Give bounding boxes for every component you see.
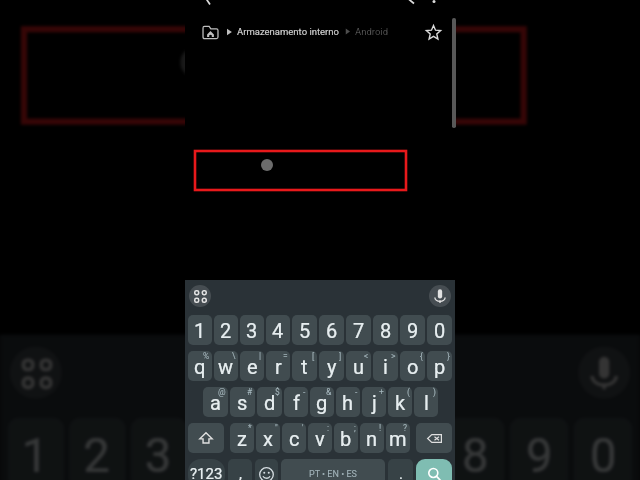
button[interactable]: q <box>188 351 212 381</box>
button[interactable]: Voice input <box>578 347 630 399</box>
button[interactable]: 9 <box>509 418 569 480</box>
button[interactable]: Search <box>416 459 452 480</box>
staticText: s <box>237 391 248 414</box>
staticText: $ <box>275 387 280 397</box>
staticText: + <box>379 387 384 397</box>
staticText: 2 <box>220 319 232 342</box>
button[interactable]: 5 <box>292 315 317 345</box>
button[interactable]: 6 <box>318 418 377 480</box>
button[interactable]: 6 <box>319 315 344 345</box>
staticText: a <box>210 391 221 414</box>
staticText: l <box>424 391 429 414</box>
staticText: 3 <box>145 427 173 480</box>
button[interactable]: h <box>336 387 360 417</box>
button[interactable]: 2 <box>69 418 126 480</box>
button[interactable]: x <box>256 423 280 453</box>
button[interactable]: 3 <box>240 315 264 345</box>
staticText: v <box>315 427 325 450</box>
button[interactable]: 9 <box>400 315 425 345</box>
button[interactable]: y <box>319 351 344 381</box>
button[interactable]: 8 <box>445 418 505 480</box>
button[interactable]: a <box>203 387 228 417</box>
button[interactable]: r <box>266 351 290 381</box>
staticText: 5 <box>299 319 311 342</box>
staticText: 8 <box>380 319 392 342</box>
button[interactable]: 0 <box>573 418 633 480</box>
button[interactable]: ?123 <box>188 459 225 480</box>
button[interactable]: n <box>360 423 384 453</box>
staticText: 7 <box>353 319 365 342</box>
staticText: j <box>372 391 377 414</box>
button[interactable] <box>416 423 452 453</box>
button[interactable]: d <box>257 387 282 417</box>
staticText: p <box>434 355 446 378</box>
button[interactable]: 4 <box>266 315 290 345</box>
button[interactable]: Keyboard options <box>189 285 211 307</box>
staticText: ] <box>339 351 342 361</box>
button[interactable]: 0 <box>427 315 452 345</box>
button[interactable]: 7 <box>346 315 371 345</box>
button[interactable] <box>188 423 224 453</box>
button[interactable]: j <box>362 387 386 417</box>
button[interactable]: 3 <box>131 418 187 480</box>
button[interactable]: u <box>346 351 371 381</box>
button[interactable]: 8 <box>373 315 398 345</box>
button[interactable]: , <box>228 459 252 480</box>
staticText: e <box>247 355 258 378</box>
staticText: 6 <box>326 319 338 342</box>
staticText: Armazenamento interno <box>237 26 339 37</box>
staticText: PT • EN • ES <box>309 469 357 480</box>
staticText: * <box>248 423 252 433</box>
button[interactable]: w <box>214 351 238 381</box>
staticText: 5 <box>270 427 299 480</box>
button[interactable]: z <box>230 423 254 453</box>
button[interactable]: Emoji <box>255 459 278 480</box>
staticText: { <box>420 351 423 361</box>
button[interactable]: m <box>386 423 410 453</box>
button[interactable]: Voice input <box>429 285 451 307</box>
button[interactable]: 4 <box>192 418 249 480</box>
staticText: % <box>203 351 210 361</box>
staticText: 9 <box>407 319 419 342</box>
button[interactable]: o <box>400 351 425 381</box>
button[interactable]: f <box>284 387 308 417</box>
staticText: m <box>389 427 407 450</box>
button[interactable]: l <box>414 387 438 417</box>
button[interactable]: c <box>282 423 306 453</box>
button[interactable]: 1 <box>188 315 212 345</box>
button[interactable]: Favourite <box>420 19 446 45</box>
button[interactable]: 5 <box>254 418 313 480</box>
button[interactable]: g <box>310 387 334 417</box>
button[interactable]: . <box>388 459 413 480</box>
button[interactable]: e <box>240 351 264 381</box>
staticText: | <box>259 351 262 361</box>
staticText: : <box>327 423 330 433</box>
staticText: - <box>355 387 358 397</box>
staticText: h <box>342 391 354 414</box>
staticText: x <box>263 427 273 450</box>
staticText: < <box>364 351 369 361</box>
button[interactable]: b <box>334 423 358 453</box>
staticText: # <box>247 387 253 397</box>
button[interactable]: s <box>230 387 255 417</box>
button[interactable]: p <box>427 351 452 381</box>
button[interactable]: t <box>292 351 317 381</box>
staticText: k <box>395 391 406 414</box>
button[interactable]: Keyboard options <box>10 347 62 399</box>
button[interactable]: k <box>388 387 412 417</box>
button[interactable]: v <box>308 423 332 453</box>
staticText: 1 <box>22 427 50 480</box>
button[interactable]: 7 <box>382 418 441 480</box>
staticText: 1 <box>194 319 206 342</box>
button[interactable]: Home <box>199 21 221 43</box>
button[interactable]: PT • EN • ES <box>281 459 385 480</box>
staticText: ? <box>403 423 408 433</box>
staticText: u <box>353 355 365 378</box>
staticText: } <box>447 351 450 361</box>
button[interactable]: i <box>373 351 398 381</box>
button[interactable]: 1 <box>7 418 64 480</box>
button[interactable]: 2 <box>214 315 238 345</box>
staticText: 8 <box>462 427 490 480</box>
staticText: n <box>366 427 378 450</box>
staticText: 0 <box>434 319 446 342</box>
